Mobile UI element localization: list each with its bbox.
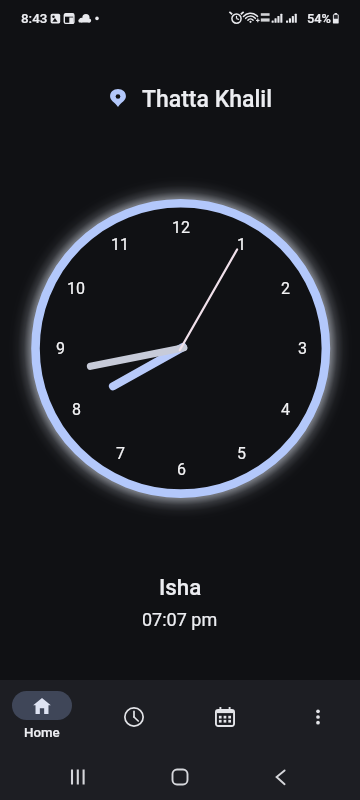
button[interactable]: Times bbox=[104, 686, 164, 746]
staticText: Home bbox=[24, 725, 60, 741]
staticText: 6 bbox=[177, 460, 186, 479]
staticText: 12 bbox=[172, 218, 190, 237]
button[interactable]: More options bbox=[288, 686, 348, 746]
button[interactable]: Calendar bbox=[195, 686, 255, 746]
staticText: 4 bbox=[281, 400, 290, 419]
staticText: 8:43 bbox=[21, 11, 48, 27]
staticText: 9 bbox=[56, 339, 65, 358]
staticText: 7 bbox=[116, 444, 125, 463]
staticText: 3 bbox=[298, 339, 307, 358]
button[interactable]: Home bbox=[0, 684, 84, 746]
staticText: 1 bbox=[237, 235, 246, 254]
staticText: Thatta Khalil bbox=[142, 86, 273, 110]
staticText: 2 bbox=[281, 279, 290, 298]
staticText: 11 bbox=[111, 235, 129, 254]
staticText: Isha bbox=[159, 574, 202, 600]
staticText: 10 bbox=[67, 279, 85, 298]
staticText: 5 bbox=[237, 444, 246, 463]
staticText: 07:07 pm bbox=[142, 609, 218, 630]
button[interactable]: Thatta Khalil bbox=[110, 86, 273, 110]
staticText: 54% bbox=[307, 11, 331, 26]
staticText: 8 bbox=[72, 400, 81, 419]
